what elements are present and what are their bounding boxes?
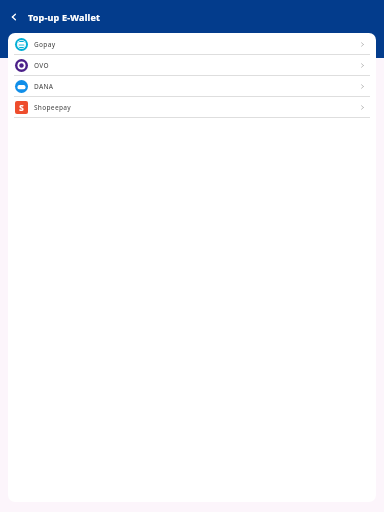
staticText: Gopay [34, 40, 56, 49]
staticText: S [19, 102, 24, 113]
button[interactable]: OVO [8, 55, 376, 75]
staticText: DANA [34, 82, 54, 91]
staticText: Top-up E-Wallet [28, 11, 101, 23]
staticText: OVO [34, 61, 49, 70]
button[interactable]: Gopay [8, 34, 376, 54]
button[interactable]: DANA [8, 76, 376, 96]
button[interactable]: S [8, 97, 376, 117]
staticText: Shopeepay [34, 103, 71, 112]
button[interactable]: Back [5, 8, 22, 25]
